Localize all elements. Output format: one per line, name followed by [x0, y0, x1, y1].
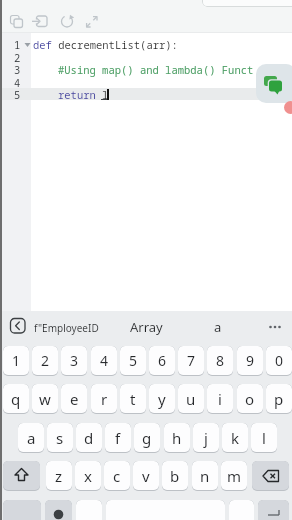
- staticText: a: [27, 428, 36, 448]
- staticText: 1: [12, 351, 21, 370]
- button[interactable]: y: [149, 384, 175, 414]
- button[interactable]: m: [221, 461, 247, 491]
- button[interactable]: 6: [149, 346, 175, 376]
- staticText: b: [170, 466, 180, 486]
- staticText: w: [39, 389, 51, 409]
- staticText: 9: [246, 351, 255, 370]
- staticText: v: [142, 466, 150, 486]
- staticText: r: [101, 389, 108, 409]
- button[interactable]: Array: [130, 317, 163, 337]
- button[interactable]: f"EmployeeID: [34, 319, 99, 337]
- button[interactable]: [45, 500, 72, 520]
- staticText: k: [231, 428, 240, 448]
- button[interactable]: [6, 12, 26, 32]
- staticText: i: [218, 389, 222, 409]
- button[interactable]: [252, 461, 289, 491]
- button[interactable]: v: [133, 461, 159, 491]
- staticText: y: [158, 389, 166, 409]
- button[interactable]: x: [75, 461, 101, 491]
- staticText: 0: [275, 351, 284, 370]
- button[interactable]: h: [164, 423, 190, 453]
- button[interactable]: z: [46, 461, 72, 491]
- staticText: z: [55, 466, 63, 486]
- button[interactable]: i: [207, 384, 233, 414]
- button[interactable]: [31, 12, 51, 32]
- button[interactable]: u: [178, 384, 204, 414]
- staticText: return l: [58, 88, 109, 102]
- staticText: 4: [100, 351, 109, 370]
- button[interactable]: 2: [32, 346, 58, 376]
- staticText: l: [262, 428, 266, 448]
- staticText: 3: [14, 63, 21, 77]
- staticText: a: [214, 318, 222, 336]
- button[interactable]: [262, 317, 286, 337]
- button[interactable]: [76, 500, 102, 520]
- staticText: x: [84, 466, 92, 486]
- staticText: s: [56, 428, 64, 448]
- staticText: 7: [187, 351, 196, 370]
- staticText: n: [200, 466, 210, 486]
- button[interactable]: d: [76, 423, 102, 453]
- button[interactable]: [258, 500, 289, 520]
- staticText: o: [245, 389, 255, 409]
- button[interactable]: k: [222, 423, 248, 453]
- button[interactable]: [82, 12, 102, 32]
- button[interactable]: 7: [178, 346, 204, 376]
- staticText: 2: [14, 51, 21, 65]
- staticText: 2: [41, 351, 50, 370]
- staticText: f"EmployeeID: [34, 321, 99, 335]
- staticText: e: [70, 389, 79, 409]
- button[interactable]: 4: [91, 346, 117, 376]
- button[interactable]: 0: [266, 346, 292, 376]
- button[interactable]: w: [32, 384, 58, 414]
- button[interactable]: 5: [120, 346, 146, 376]
- button[interactable]: n: [192, 461, 218, 491]
- button[interactable]: a: [214, 317, 222, 337]
- staticText: m: [227, 466, 242, 486]
- button[interactable]: p: [266, 384, 292, 414]
- button[interactable]: [256, 64, 292, 103]
- staticText: g: [142, 428, 152, 448]
- staticText: t: [130, 389, 136, 409]
- button[interactable]: c: [104, 461, 130, 491]
- button[interactable]: 8: [207, 346, 233, 376]
- button[interactable]: o: [237, 384, 263, 414]
- button[interactable]: q: [3, 384, 29, 414]
- button[interactable]: s: [47, 423, 73, 453]
- button[interactable]: t: [120, 384, 146, 414]
- button[interactable]: [8, 316, 28, 336]
- staticText: u: [186, 389, 196, 409]
- button[interactable]: 9: [237, 346, 263, 376]
- button[interactable]: j: [193, 423, 219, 453]
- staticText: d: [84, 428, 94, 448]
- button[interactable]: g: [134, 423, 160, 453]
- staticText: 5: [14, 88, 21, 102]
- staticText: 5: [129, 351, 138, 370]
- staticText: #Using map() and lambda() Funct: [58, 63, 254, 77]
- staticText: 3: [70, 351, 79, 370]
- button[interactable]: a: [18, 423, 44, 453]
- button[interactable]: r: [91, 384, 117, 414]
- button[interactable]: b: [162, 461, 188, 491]
- staticText: 6: [158, 351, 167, 370]
- button[interactable]: e: [61, 384, 87, 414]
- staticText: 8: [216, 351, 225, 370]
- staticText: q: [11, 389, 21, 409]
- button[interactable]: [3, 461, 40, 491]
- button[interactable]: [229, 500, 254, 520]
- staticText: c: [113, 466, 121, 486]
- staticText: def decrementList(arr):: [33, 38, 178, 52]
- staticText: 1: [14, 38, 21, 52]
- button[interactable]: l: [251, 423, 277, 453]
- staticText: f: [115, 428, 121, 448]
- button[interactable]: 1: [3, 346, 29, 376]
- staticText: h: [172, 428, 182, 448]
- button[interactable]: [57, 12, 77, 32]
- staticText: j: [204, 428, 208, 448]
- button[interactable]: f: [105, 423, 131, 453]
- staticText: 4: [14, 76, 21, 90]
- button[interactable]: 3: [61, 346, 87, 376]
- staticText: Array: [130, 318, 163, 336]
